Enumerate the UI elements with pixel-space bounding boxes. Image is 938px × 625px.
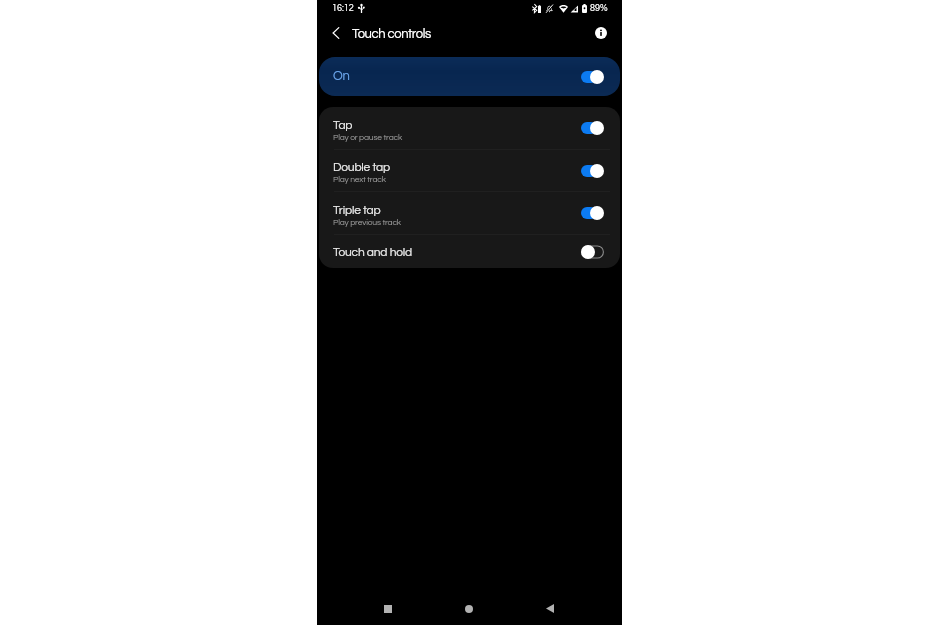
staticText: Triple tap (333, 204, 381, 216)
button[interactable]: Double tap (319, 150, 620, 191)
staticText: 16:12 (332, 4, 354, 13)
button[interactable]: Navigate up (328, 25, 344, 41)
button[interactable]: Home (452, 592, 486, 625)
staticText: Play or pause track (333, 133, 403, 142)
button[interactable]: Recent apps (371, 592, 405, 625)
button[interactable]: Information (595, 27, 607, 39)
staticText: Tap (333, 119, 353, 131)
staticText: Touch and hold (333, 246, 413, 258)
button[interactable]: Touch and hold (319, 235, 620, 268)
staticText: 89% (590, 4, 608, 13)
button[interactable]: Triple tap (319, 192, 620, 234)
staticText: Touch controls (352, 27, 431, 40)
button[interactable]: Back (533, 592, 567, 625)
staticText: On (333, 69, 350, 82)
button[interactable]: On (319, 57, 620, 96)
staticText: Play next track (333, 175, 386, 184)
staticText: Play previous track (333, 218, 401, 227)
button[interactable]: Tap (319, 107, 620, 149)
staticText: Double tap (333, 161, 390, 173)
